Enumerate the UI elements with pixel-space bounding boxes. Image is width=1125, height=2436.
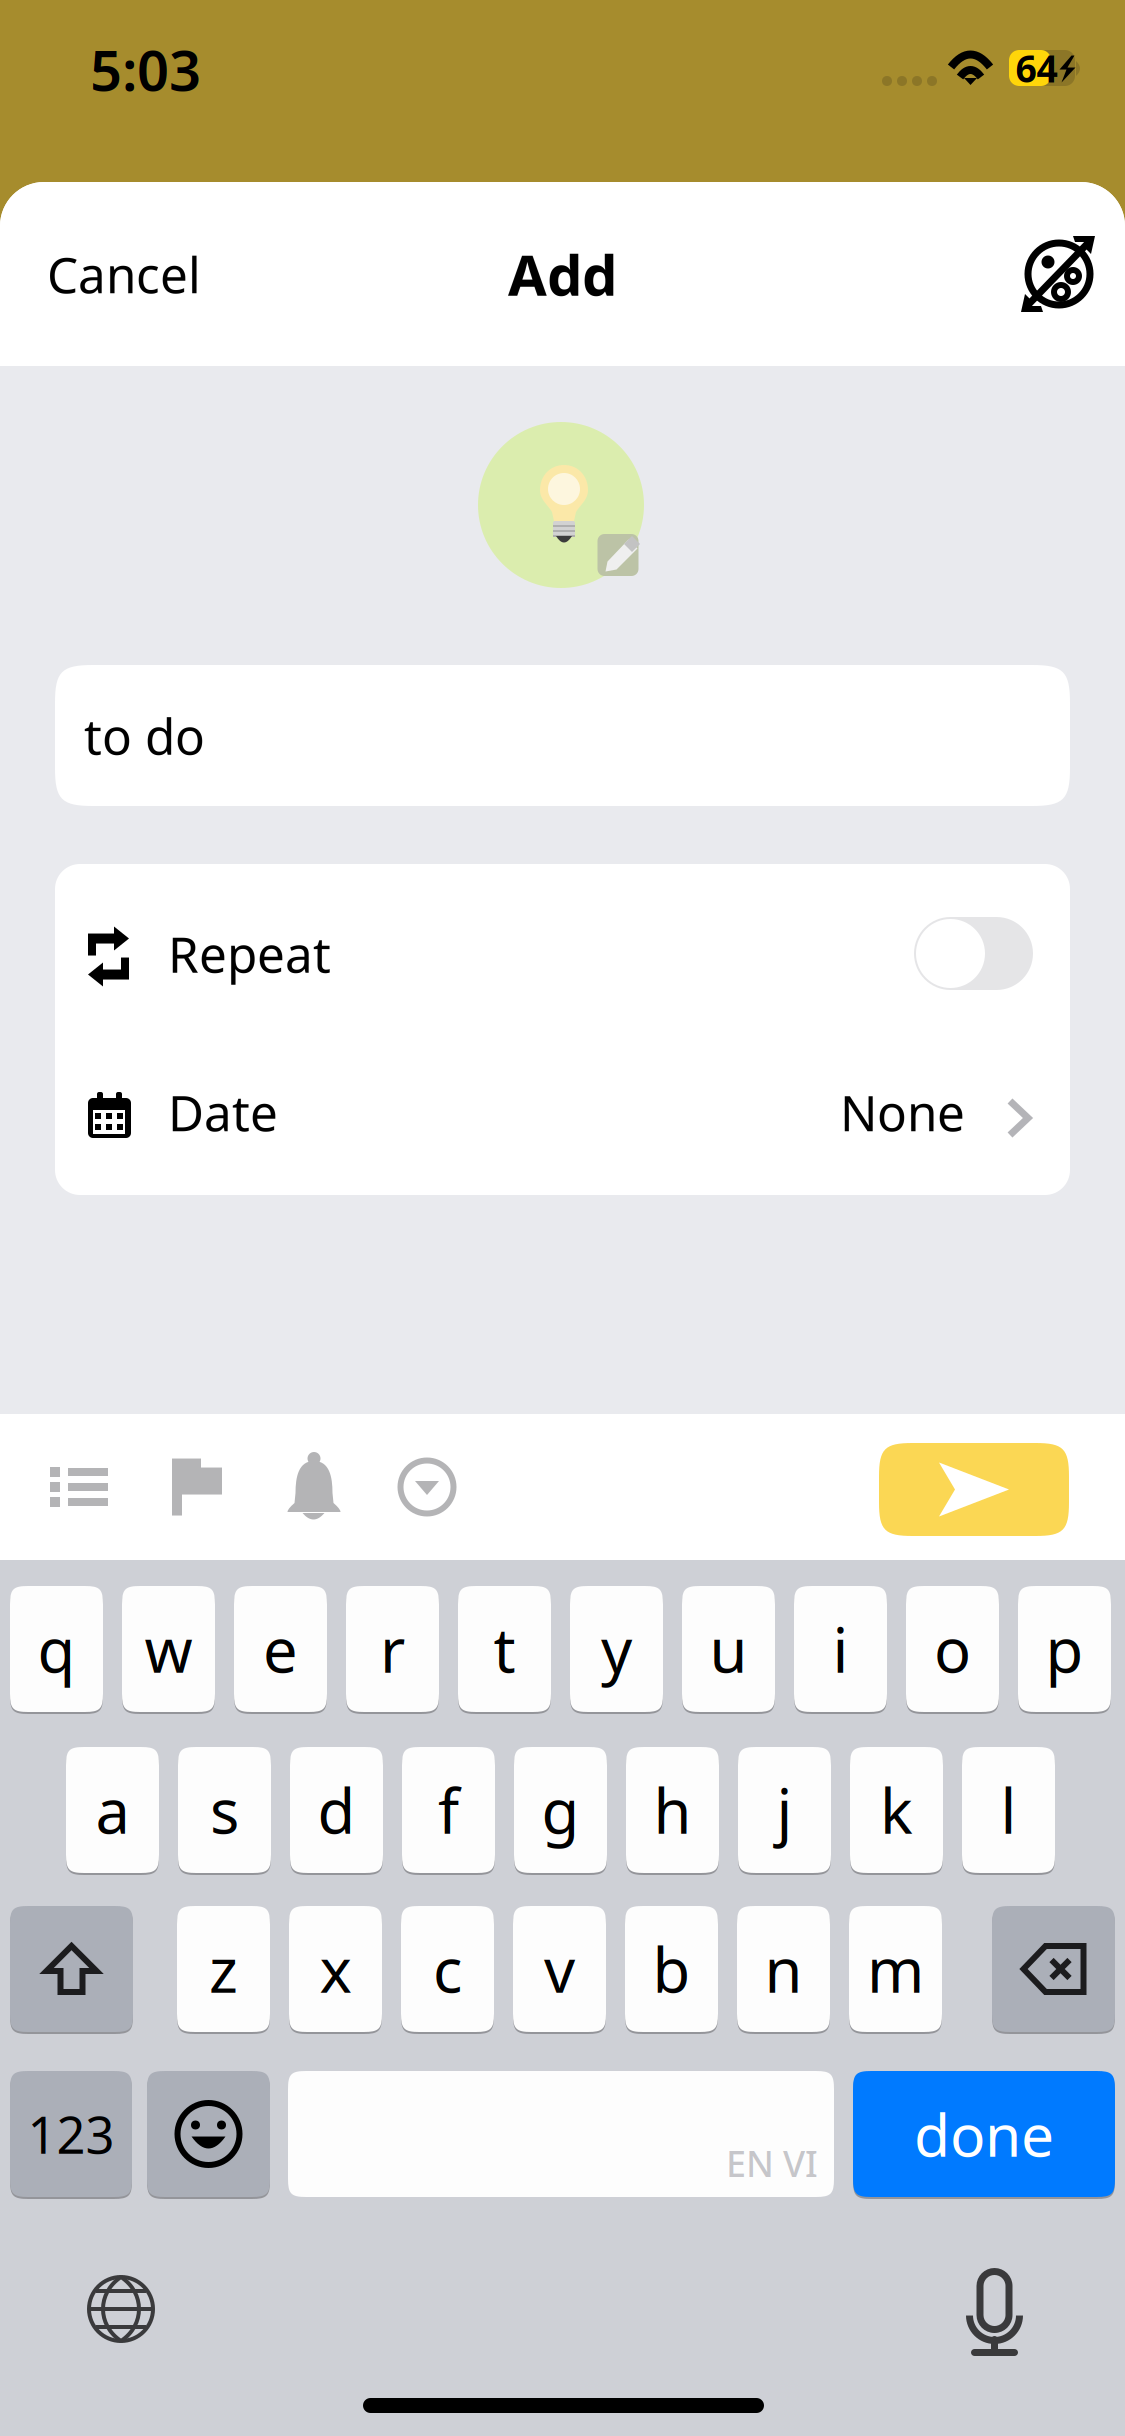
button[interactable]: b [625,1906,718,2032]
staticText: u [709,1608,747,1690]
button[interactable]: Send [879,1443,1069,1536]
button[interactable]: e [234,1586,327,1712]
staticText: x [319,1928,351,2010]
button[interactable]: Checklist [31,1437,127,1537]
button[interactable]: 123 [10,2071,132,2197]
button[interactable]: c [401,1906,494,2032]
staticText: None [840,1079,965,1145]
staticText: t [493,1608,515,1690]
staticText: p [1045,1608,1083,1690]
button[interactable]: x [289,1906,382,2032]
button[interactable]: More [379,1437,475,1537]
button[interactable]: p [1018,1586,1111,1712]
button[interactable]: r [346,1586,439,1712]
staticText: done [914,2095,1054,2173]
button[interactable]: n [737,1906,830,2032]
staticText: i [832,1608,848,1690]
button[interactable]: s [178,1747,271,1873]
button[interactable]: u [682,1586,775,1712]
button[interactable]: Date [55,1029,1070,1195]
button[interactable]: Flag [149,1437,245,1537]
button[interactable]: k [850,1747,943,1873]
button[interactable]: Emoji [147,2071,270,2197]
button[interactable]: Change keyboard [87,2275,155,2343]
button[interactable]: i [794,1586,887,1712]
staticText: q [37,1608,75,1690]
button[interactable]: h [626,1747,719,1873]
button[interactable]: f [402,1747,495,1873]
staticText: s [210,1769,239,1851]
staticText: l [1000,1769,1016,1851]
staticText: n [764,1928,802,2010]
button[interactable]: to do [55,665,1070,806]
staticText: b [652,1928,690,2010]
button[interactable]: a [66,1747,159,1873]
staticText: to do [84,703,205,768]
button[interactable]: Repeat [55,871,1070,1036]
button[interactable]: Cancel [29,219,219,329]
staticText: k [880,1769,913,1851]
button[interactable]: t [458,1586,551,1712]
button[interactable]: j [738,1747,831,1873]
button[interactable]: w [122,1586,215,1712]
staticText: Add [508,237,617,311]
staticText: o [934,1608,971,1690]
button[interactable]: d [290,1747,383,1873]
button[interactable]: done [853,2071,1115,2197]
staticText: c [433,1928,462,2010]
button[interactable]: m [849,1906,942,2032]
staticText: m [867,1928,924,2010]
staticText: EN VI [726,2139,818,2187]
staticText: g [541,1769,579,1851]
button[interactable]: q [10,1586,103,1712]
button[interactable]: g [514,1747,607,1873]
staticText: Cancel [47,241,201,307]
staticText: 64 [1015,43,1057,93]
button[interactable]: Space [288,2071,834,2197]
staticText: e [263,1608,298,1690]
staticText: f [438,1769,459,1851]
button[interactable]: Theme [1007,220,1111,328]
button[interactable]: Delete [992,1906,1115,2032]
staticText: Repeat [168,921,331,986]
button[interactable]: v [513,1906,606,2032]
staticText: v [544,1928,575,2010]
staticText: z [209,1928,238,2010]
staticText: h [653,1769,691,1851]
button[interactable]: Reminder [266,1437,362,1537]
staticText: Date [168,1079,278,1145]
staticText: j [776,1769,792,1851]
staticText: d [317,1769,355,1851]
staticText: 123 [27,2100,114,2168]
button[interactable]: Shift [10,1906,133,2032]
button[interactable]: Dictate [966,2270,1023,2355]
button[interactable]: o [906,1586,999,1712]
button[interactable]: y [570,1586,663,1712]
button[interactable]: z [177,1906,270,2032]
staticText: y [601,1608,632,1690]
staticText: 5:03 [90,32,201,106]
button[interactable]: l [962,1747,1055,1873]
staticText: a [95,1769,129,1851]
staticText: r [380,1608,405,1690]
staticText: w [144,1608,192,1690]
